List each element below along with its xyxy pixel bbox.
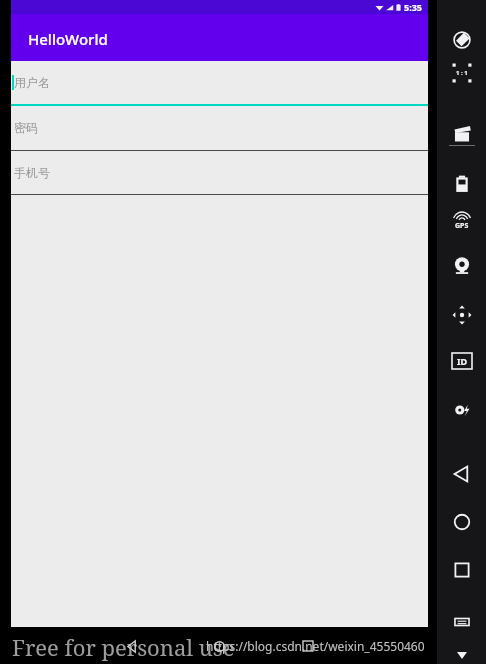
- button[interactable]: Rotate: [446, 24, 478, 56]
- staticText: ID: [457, 355, 468, 367]
- staticText: https://blog.csdn.net/weixin_45550460: [206, 638, 425, 654]
- staticText: 密码: [14, 120, 38, 135]
- button[interactable]: Directional pad: [446, 299, 478, 331]
- button[interactable]: 用户名: [11, 61, 428, 106]
- staticText: HelloWorld: [28, 29, 108, 49]
- button[interactable]: HelloWorld: [11, 14, 428, 61]
- button[interactable]: Record: [446, 394, 478, 426]
- staticText: 用户名: [14, 75, 50, 90]
- button[interactable]: Camera: [446, 250, 478, 282]
- button[interactable]: Battery: [446, 168, 478, 200]
- staticText: GPS: [455, 221, 469, 231]
- staticText: 5:35: [404, 1, 422, 13]
- button[interactable]: Zoom 1 to 1: [447, 58, 477, 88]
- button[interactable]: Recent apps: [298, 636, 318, 656]
- button[interactable]: Phone ID: [447, 346, 477, 376]
- staticText: 1 : 1: [456, 69, 468, 77]
- staticText: 手机号: [14, 165, 50, 180]
- button[interactable]: 手机号: [11, 151, 428, 195]
- staticText: Free for personal use: [12, 632, 235, 662]
- button[interactable]: Back: [446, 458, 478, 490]
- button[interactable]: Take screenshot: [446, 118, 478, 150]
- button[interactable]: 密码: [11, 106, 428, 151]
- button[interactable]: Home: [446, 506, 478, 538]
- button[interactable]: Menu: [446, 606, 478, 638]
- button[interactable]: Home: [209, 636, 229, 656]
- button[interactable]: Overview: [446, 554, 478, 586]
- button[interactable]: Location GPS: [446, 205, 478, 237]
- button[interactable]: Back: [122, 636, 142, 656]
- button[interactable]: More: [453, 646, 471, 664]
